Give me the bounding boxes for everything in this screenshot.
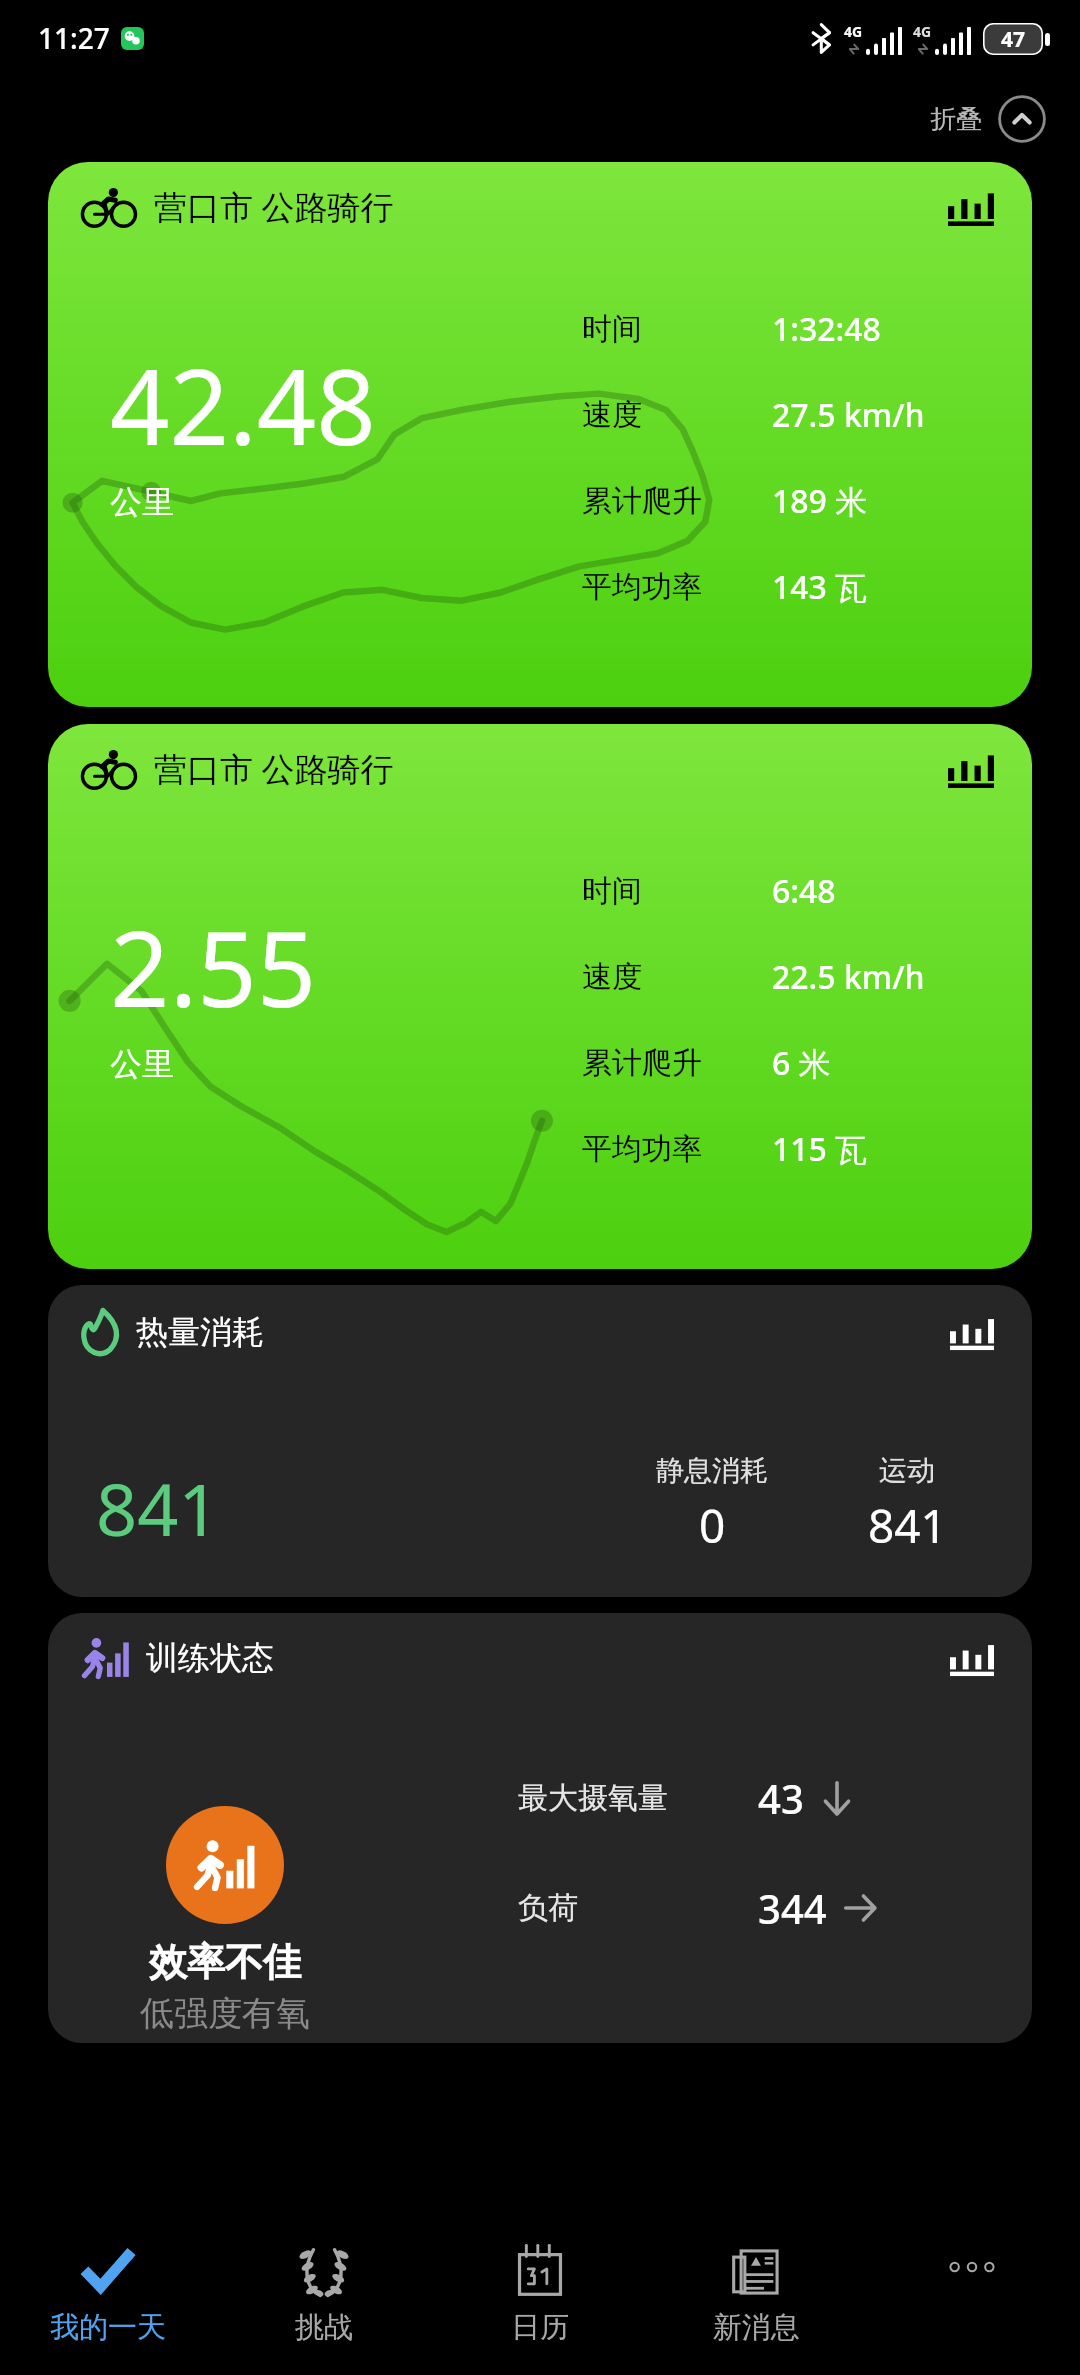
button[interactable]: 日历 — [432, 2223, 648, 2375]
staticText: 115 瓦 — [772, 1127, 868, 1171]
button[interactable]: 折叠 — [924, 91, 1052, 147]
staticText: 143 瓦 — [772, 565, 868, 609]
staticText: 日历 — [511, 2309, 569, 2346]
button[interactable]: 热量消耗 — [48, 1285, 1032, 1597]
staticText: 新消息 — [713, 2309, 800, 2346]
staticText: 折叠 — [930, 103, 982, 136]
staticText: 静息消耗 — [656, 1453, 768, 1488]
staticText: 挑战 — [295, 2309, 353, 2346]
staticText: 公里 — [110, 482, 174, 522]
button[interactable]: 统计图 — [950, 1313, 994, 1351]
staticText: 公里 — [110, 1044, 174, 1084]
staticText: 平均功率 — [582, 568, 702, 606]
staticText: 累计爬升 — [582, 1044, 702, 1082]
staticText: 运动 — [879, 1453, 935, 1488]
staticText: 27.5 km/h — [772, 393, 925, 437]
button[interactable]: 训练状态 — [48, 1613, 1032, 2043]
button[interactable]: 更多 — [864, 2223, 1080, 2375]
staticText: 速度 — [582, 958, 642, 996]
staticText: 时间 — [582, 872, 642, 910]
staticText: 速度 — [582, 396, 642, 434]
button[interactable]: 统计图 — [948, 749, 994, 789]
staticText: 0 — [699, 1494, 726, 1557]
staticText: 平均功率 — [582, 1130, 702, 1168]
button[interactable]: 挑战 — [216, 2223, 432, 2375]
staticText: 效率不佳 — [149, 1938, 301, 1986]
staticText: 营口市 公路骑行 — [154, 746, 394, 791]
staticText: 22.5 km/h — [772, 955, 925, 999]
staticText: 189 米 — [772, 479, 868, 523]
staticText: 42.48 — [110, 334, 376, 476]
button[interactable]: 新消息 — [648, 2223, 864, 2375]
staticText: 47 — [1001, 25, 1026, 54]
button[interactable]: 营口市 公路骑行 — [48, 162, 1032, 707]
staticText: 营口市 公路骑行 — [154, 184, 394, 229]
staticText: 最大摄氧量 — [518, 1779, 668, 1817]
staticText: 1:32:48 — [772, 307, 881, 351]
staticText: 低强度有氧 — [140, 1992, 310, 2035]
button[interactable]: 统计图 — [950, 1639, 994, 1677]
staticText: 6:48 — [772, 869, 836, 913]
staticText: 时间 — [582, 310, 642, 348]
staticText: 训练状态 — [146, 1638, 274, 1678]
staticText: 841 — [96, 1459, 220, 1557]
button[interactable]: 统计图 — [948, 187, 994, 227]
staticText: 2.55 — [110, 896, 317, 1038]
button[interactable]: 营口市 公路骑行 — [48, 724, 1032, 1269]
staticText: 6 米 — [772, 1041, 831, 1085]
staticText: 热量消耗 — [136, 1312, 264, 1352]
button[interactable]: 我的一天 — [0, 2223, 216, 2375]
staticText: 我的一天 — [50, 2309, 166, 2346]
staticText: 累计爬升 — [582, 482, 702, 520]
staticText: 11:27 — [38, 19, 110, 57]
staticText: 4G — [844, 22, 863, 41]
staticText: 4G — [913, 22, 932, 41]
staticText: 841 — [868, 1494, 947, 1557]
staticText: 344 — [758, 1881, 827, 1935]
staticText: 负荷 — [518, 1889, 578, 1927]
other: 折叠 — [998, 95, 1046, 143]
staticText: 43 — [758, 1771, 804, 1825]
